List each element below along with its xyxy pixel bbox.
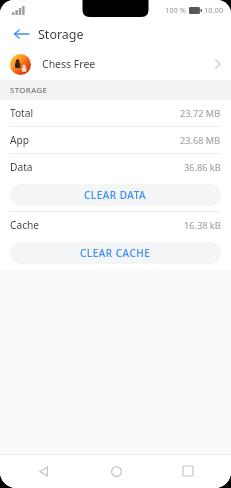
button[interactable]: Back xyxy=(26,454,60,488)
button[interactable]: Cache xyxy=(0,212,231,238)
button[interactable]: Recents xyxy=(171,454,205,488)
button[interactable]: Data xyxy=(0,154,231,180)
staticText: Storage xyxy=(38,26,84,43)
button[interactable]: CLEAR DATA xyxy=(10,184,221,206)
staticText: CLEAR DATA xyxy=(84,188,147,202)
staticText: 36.86 kB xyxy=(184,161,221,174)
staticText: Data xyxy=(10,160,33,174)
staticText: CLEAR CACHE xyxy=(80,246,151,260)
staticText: Total xyxy=(10,106,34,120)
staticText: 23.68 MB xyxy=(180,134,221,147)
button[interactable]: Home xyxy=(99,454,133,488)
button[interactable]: App xyxy=(0,127,231,153)
button[interactable]: Total xyxy=(0,100,231,126)
staticText: 16.38 kB xyxy=(184,219,221,232)
staticText: 23.72 MB xyxy=(180,107,221,120)
staticText: App xyxy=(10,133,30,147)
button[interactable]: CLEAR CACHE xyxy=(10,242,221,264)
button[interactable]: Back xyxy=(8,21,34,47)
staticText: 100 % xyxy=(165,5,187,15)
staticText: STORAGE xyxy=(10,85,48,96)
button[interactable]: Chess Free xyxy=(0,48,231,80)
staticText: 10.00 xyxy=(204,5,224,15)
staticText: Cache xyxy=(10,218,40,232)
staticText: Chess Free xyxy=(42,57,96,71)
